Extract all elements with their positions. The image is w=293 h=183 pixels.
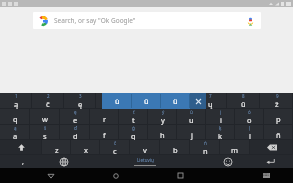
staticText: z bbox=[55, 145, 59, 155]
staticText: č bbox=[114, 140, 117, 146]
button[interactable]: ģ bbox=[119, 125, 148, 140]
staticText: n bbox=[203, 146, 208, 155]
button[interactable]: q bbox=[0, 109, 30, 125]
button[interactable]: 9 bbox=[260, 93, 293, 109]
button[interactable]: ą bbox=[0, 125, 30, 140]
staticText: s bbox=[43, 131, 47, 140]
staticText: 3 bbox=[79, 93, 82, 99]
staticText: f bbox=[103, 130, 106, 140]
staticText: h bbox=[160, 130, 165, 140]
staticText: , bbox=[22, 157, 24, 167]
button[interactable]: Backspace bbox=[250, 140, 293, 155]
staticText: 8 bbox=[242, 93, 245, 99]
staticText: ń bbox=[204, 140, 207, 146]
staticText: ü bbox=[173, 96, 178, 106]
button[interactable]: Home bbox=[95, 168, 136, 183]
button[interactable]: ù bbox=[102, 93, 132, 109]
button[interactable]: 2 bbox=[32, 93, 64, 109]
button[interactable]: 5 bbox=[128, 93, 161, 109]
staticText: c bbox=[113, 146, 117, 155]
button[interactable]: 6 bbox=[161, 93, 194, 109]
staticText: ą bbox=[14, 125, 17, 131]
staticText: ķ bbox=[219, 125, 222, 131]
staticText: Lietuvių bbox=[137, 157, 154, 163]
button[interactable]: č bbox=[100, 140, 130, 155]
staticText: ļ bbox=[249, 125, 251, 131]
staticText: į bbox=[144, 99, 146, 109]
staticText: j bbox=[191, 130, 193, 140]
button[interactable]: b bbox=[160, 140, 190, 155]
button[interactable]: Space bbox=[81, 155, 209, 168]
staticText: ž bbox=[275, 99, 279, 109]
staticText: q bbox=[13, 114, 18, 124]
button[interactable]: ý bbox=[148, 109, 177, 125]
staticText: Search, or say "Ok Google" bbox=[54, 16, 136, 25]
button[interactable]: w bbox=[30, 109, 60, 125]
button[interactable]: Enter bbox=[247, 155, 293, 168]
button[interactable]: ó bbox=[235, 109, 264, 125]
button[interactable]: ü bbox=[161, 93, 190, 109]
staticText: m bbox=[231, 145, 239, 155]
button[interactable]: 4 bbox=[96, 93, 128, 109]
button[interactable]: š bbox=[30, 125, 60, 140]
staticText: a bbox=[13, 131, 18, 140]
button[interactable]: ķ bbox=[206, 125, 235, 140]
staticText: ť bbox=[133, 109, 135, 115]
staticText: ñ bbox=[276, 130, 281, 140]
button[interactable]: Cancel bbox=[190, 93, 206, 109]
button[interactable]: ñ bbox=[264, 125, 293, 140]
button[interactable]: Emoji bbox=[209, 155, 247, 168]
staticText: ą bbox=[14, 99, 19, 109]
button[interactable]: m bbox=[220, 140, 250, 155]
staticText: i bbox=[220, 115, 222, 125]
staticText: ū bbox=[241, 99, 246, 109]
button[interactable]: Recent apps bbox=[160, 168, 201, 183]
button[interactable]: Back bbox=[30, 168, 71, 183]
staticText: o bbox=[247, 115, 252, 125]
button[interactable]: ť bbox=[119, 109, 148, 125]
staticText: š bbox=[176, 99, 180, 109]
staticText: 9 bbox=[276, 93, 279, 99]
button[interactable]: Change language bbox=[46, 155, 81, 168]
staticText: č bbox=[46, 99, 50, 109]
button[interactable]: r bbox=[90, 109, 119, 125]
button[interactable]: Shift bbox=[0, 140, 42, 155]
staticText: ū bbox=[190, 109, 193, 115]
button[interactable]: ę bbox=[60, 109, 90, 125]
button[interactable]: z bbox=[42, 140, 71, 155]
staticText: u bbox=[189, 115, 194, 125]
button[interactable]: Symbols bbox=[0, 155, 46, 168]
staticText: y bbox=[161, 115, 165, 125]
button[interactable]: ū bbox=[177, 109, 206, 125]
staticText: v bbox=[143, 145, 147, 155]
staticText: g bbox=[131, 131, 136, 140]
button[interactable]: ď bbox=[60, 125, 90, 140]
button[interactable]: Voice search bbox=[244, 15, 256, 27]
staticText: t bbox=[132, 115, 135, 125]
button[interactable]: ń bbox=[190, 140, 220, 155]
button[interactable]: 1 bbox=[0, 93, 32, 109]
button[interactable]: f bbox=[90, 125, 119, 140]
button[interactable]: p bbox=[264, 109, 293, 125]
staticText: x bbox=[84, 145, 88, 155]
button[interactable]: Switch keyboard bbox=[248, 168, 284, 183]
staticText: ý bbox=[162, 109, 165, 115]
button[interactable]: 3 bbox=[64, 93, 96, 109]
button[interactable]: j bbox=[177, 125, 206, 140]
staticText: ę bbox=[74, 109, 77, 115]
staticText: 2 bbox=[47, 93, 50, 99]
button[interactable]: Search, or say "Ok Google" bbox=[33, 12, 261, 29]
button[interactable]: x bbox=[71, 140, 100, 155]
button[interactable]: ļ bbox=[235, 125, 264, 140]
button[interactable]: v bbox=[130, 140, 160, 155]
button[interactable]: į bbox=[206, 109, 235, 125]
staticText: l bbox=[249, 131, 251, 140]
button[interactable]: h bbox=[148, 125, 177, 140]
button[interactable]: 7 bbox=[194, 93, 227, 109]
button[interactable]: û bbox=[132, 93, 161, 109]
staticText: d bbox=[73, 131, 78, 140]
staticText: p bbox=[276, 114, 281, 124]
staticText: į bbox=[220, 109, 222, 115]
button[interactable]: 8 bbox=[227, 93, 260, 109]
